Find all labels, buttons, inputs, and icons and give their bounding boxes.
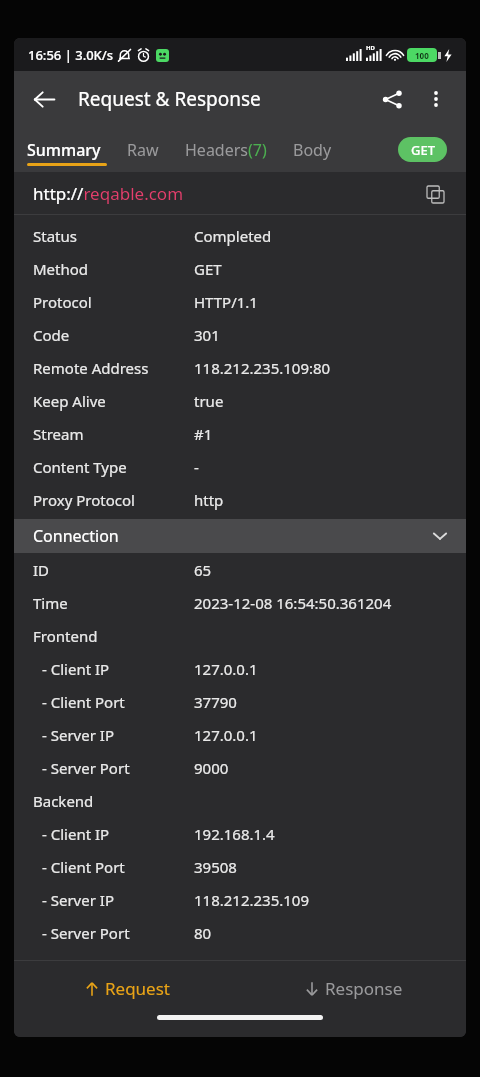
staticText: Connection (33, 525, 119, 547)
staticText: Request (105, 977, 170, 1000)
staticText: 118.212.235.109 (194, 890, 310, 910)
staticText: Proxy Protocol (33, 490, 135, 510)
button[interactable]: Raw (114, 135, 172, 165)
button[interactable]: - Client IP (14, 652, 466, 685)
button[interactable]: Summary (14, 135, 114, 165)
button[interactable]: Method (14, 252, 466, 285)
staticText: Protocol (33, 292, 92, 312)
staticText: - (194, 457, 199, 477)
button[interactable]: - Client IP (14, 817, 466, 850)
staticText: 127.0.0.1 (194, 725, 258, 745)
staticText: 80 (194, 923, 212, 943)
button[interactable]: Response (240, 961, 466, 1015)
staticText: 127.0.0.1 (194, 659, 258, 679)
button[interactable]: Time (14, 586, 466, 619)
staticText: - Server IP (42, 890, 114, 910)
staticText: - Client IP (42, 824, 110, 844)
staticText: Remote Address (33, 358, 149, 378)
button[interactable]: Keep Alive (14, 384, 466, 417)
staticText: 192.168.1.4 (194, 824, 275, 844)
staticText: - Client Port (42, 692, 125, 712)
button[interactable]: - Client Port (14, 850, 466, 883)
staticText: Keep Alive (33, 391, 106, 411)
staticText: true (194, 391, 224, 411)
staticText: http://reqable.com (33, 182, 184, 205)
staticText: - Server IP (42, 725, 114, 745)
staticText: 65 (194, 560, 212, 580)
button[interactable]: Status (14, 219, 466, 252)
button[interactable]: Share (370, 77, 414, 121)
button[interactable]: Code (14, 318, 466, 351)
staticText: Raw (127, 139, 159, 161)
staticText: Backend (33, 791, 94, 811)
button[interactable]: GET (398, 137, 447, 162)
staticText: Frontend (33, 626, 98, 646)
button[interactable]: Copy URL (418, 177, 452, 211)
staticText: 2023-12-08 16:54:50.361204 (194, 593, 392, 613)
staticText: Content Type (33, 457, 127, 477)
staticText: 100 (415, 50, 429, 61)
staticText: HD (366, 44, 375, 52)
staticText: 301 (194, 325, 220, 345)
button[interactable]: Request (14, 961, 240, 1015)
staticText: Stream (33, 424, 84, 444)
staticText: Headers(7) (185, 139, 267, 161)
button[interactable]: Back (22, 77, 66, 121)
button[interactable]: Protocol (14, 285, 466, 318)
button[interactable]: Proxy Protocol (14, 483, 466, 516)
staticText: http (194, 490, 224, 510)
button[interactable]: - Server Port (14, 751, 466, 784)
staticText: - Client IP (42, 659, 110, 679)
button[interactable]: Backend (14, 784, 466, 817)
staticText: 9000 (194, 758, 229, 778)
staticText: 39508 (194, 857, 237, 877)
staticText: 118.212.235.109:80 (194, 358, 331, 378)
button[interactable]: Connection (14, 519, 466, 553)
button[interactable]: Body (280, 135, 345, 165)
button[interactable]: Content Type (14, 450, 466, 483)
button[interactable]: http://reqable.com (14, 172, 466, 215)
staticText: Code (33, 325, 70, 345)
button[interactable]: - Server IP (14, 718, 466, 751)
button[interactable]: - Server Port (14, 916, 466, 949)
staticText: - Server Port (42, 758, 130, 778)
staticText: Response (325, 977, 403, 1000)
button[interactable]: Stream (14, 417, 466, 450)
staticText: ID (33, 560, 50, 580)
staticText: GET (194, 259, 222, 279)
button[interactable]: Remote Address (14, 351, 466, 384)
staticText: 37790 (194, 692, 237, 712)
staticText: - Client Port (42, 857, 125, 877)
staticText: GET (411, 141, 435, 159)
staticText: HTTP/1.1 (194, 292, 258, 312)
button[interactable]: - Client Port (14, 685, 466, 718)
staticText: - Server Port (42, 923, 130, 943)
staticText: Body (293, 139, 332, 161)
staticText: 16:56 | 3.0K/s (28, 46, 114, 64)
button[interactable]: Frontend (14, 619, 466, 652)
staticText: Status (33, 226, 77, 246)
button[interactable]: Headers(7) (172, 135, 280, 165)
staticText: Completed (194, 226, 272, 246)
button[interactable]: More options (414, 77, 458, 121)
staticText: Method (33, 259, 89, 279)
button[interactable]: ID (14, 553, 466, 586)
staticText: #1 (194, 424, 213, 444)
staticText: Request & Response (78, 86, 261, 112)
staticText: Time (33, 593, 68, 613)
staticText: Summary (27, 139, 101, 161)
button[interactable]: - Server IP (14, 883, 466, 916)
